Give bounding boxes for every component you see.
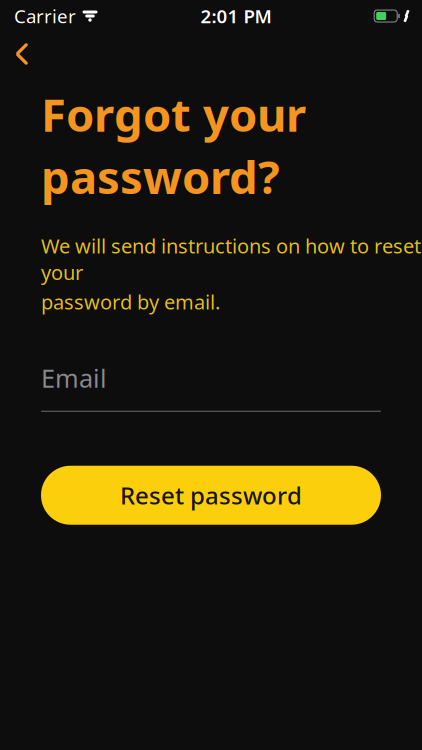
button[interactable]: Reset password bbox=[41, 466, 381, 525]
staticText: password? bbox=[41, 146, 280, 206]
button[interactable]: Back bbox=[0, 34, 44, 74]
staticText: We will send instructions on how to rese… bbox=[41, 232, 421, 285]
staticText: Email bbox=[41, 361, 107, 395]
staticText: password by email. bbox=[41, 288, 220, 315]
staticText: Carrier bbox=[14, 4, 76, 28]
staticText: Forgot your bbox=[41, 84, 306, 144]
staticText: Reset password bbox=[120, 479, 302, 511]
staticText: 2:01 PM bbox=[200, 4, 271, 28]
